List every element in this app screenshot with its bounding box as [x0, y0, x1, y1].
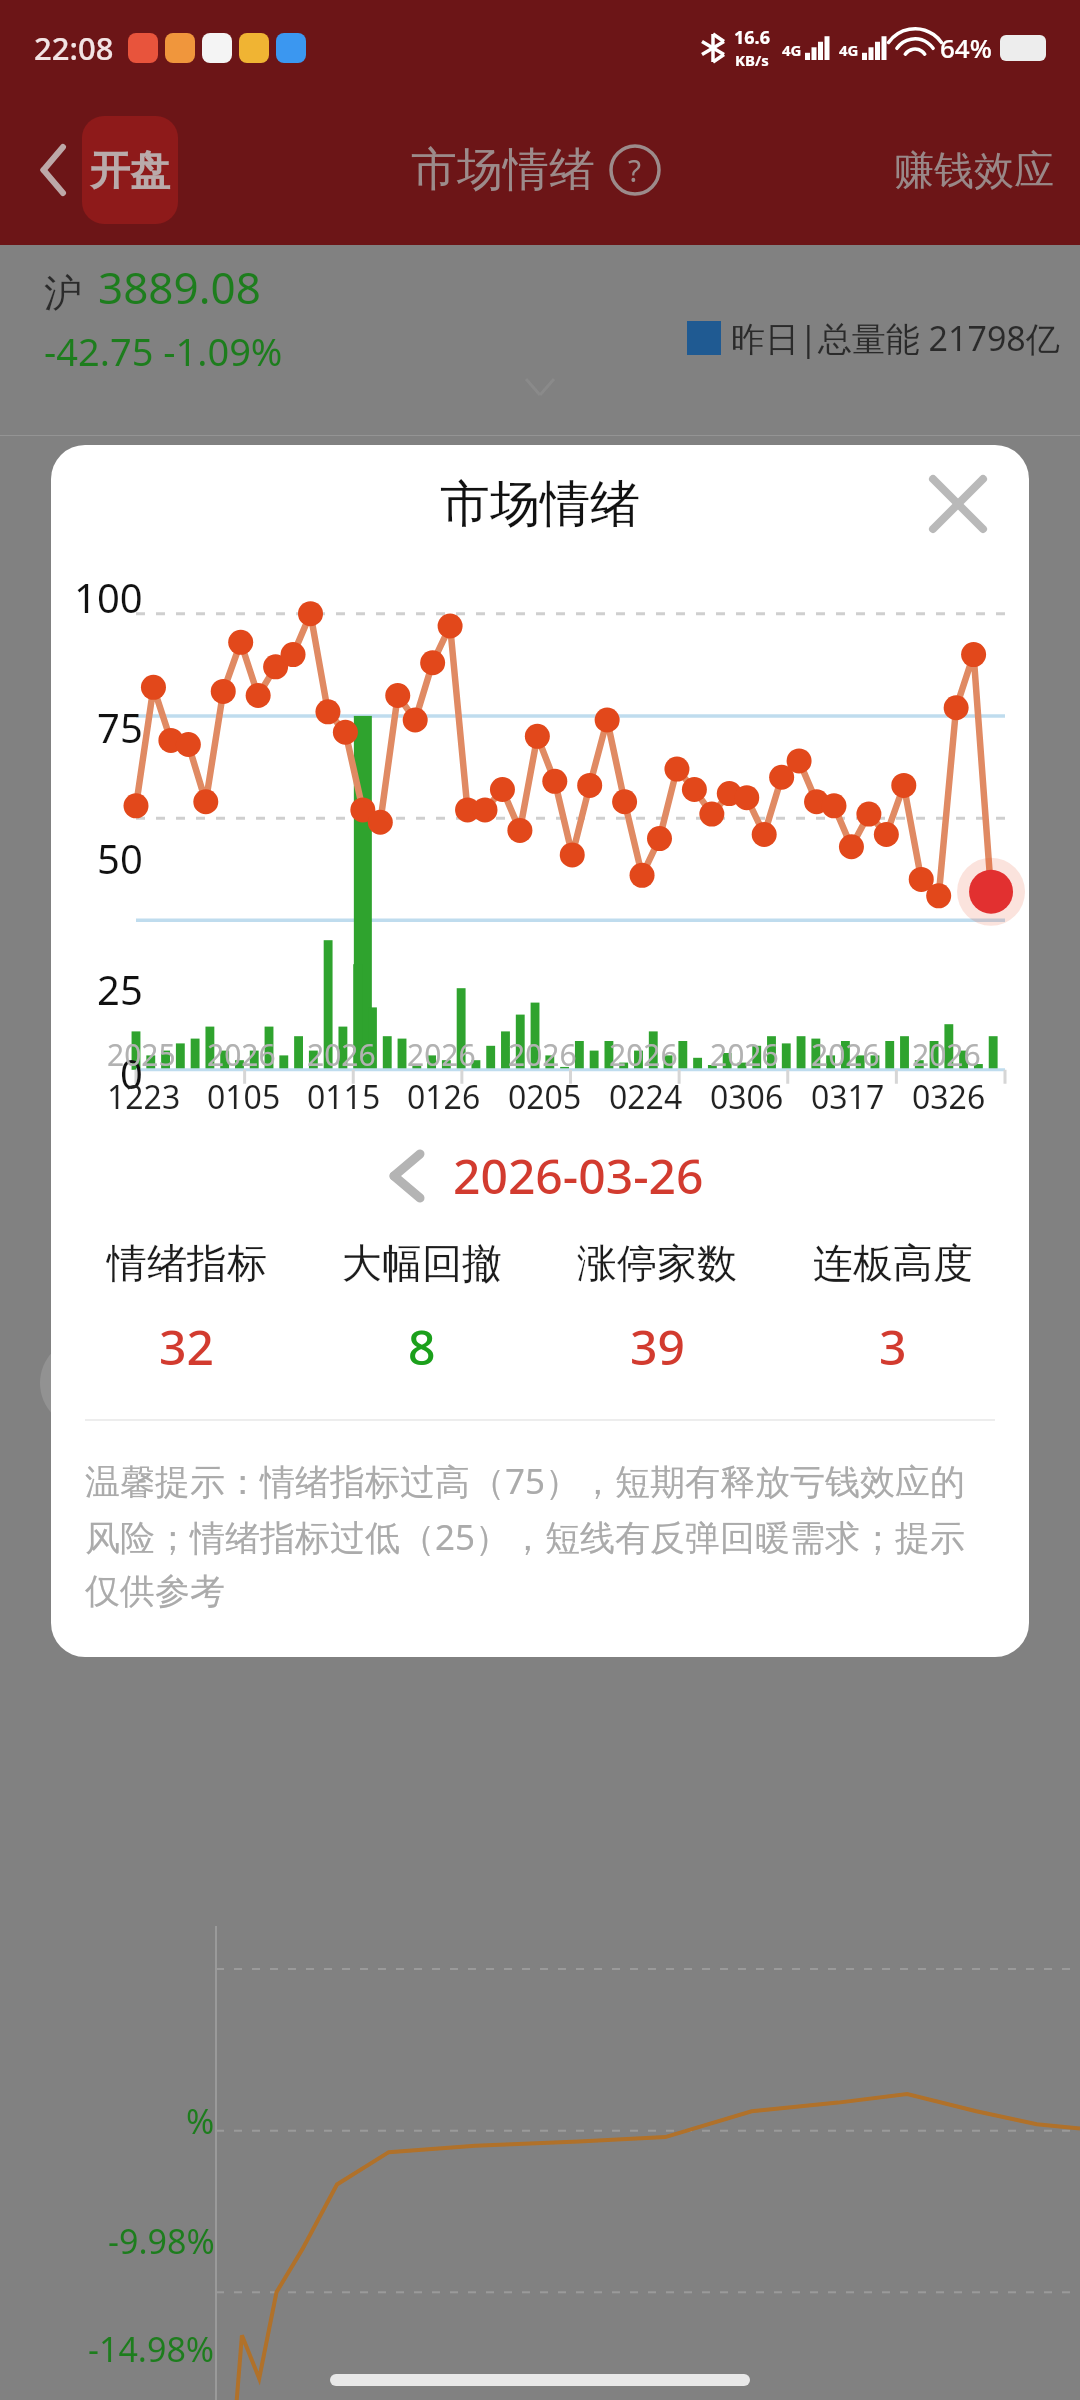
staticText: 8	[408, 1314, 436, 1379]
staticText: 市场情绪	[440, 473, 640, 536]
button[interactable]: 连板高度	[775, 1238, 1011, 1379]
staticText: 32	[159, 1314, 214, 1379]
staticText: 2026	[508, 1034, 577, 1075]
staticText: 2026	[811, 1034, 880, 1075]
staticText: 2026	[912, 1034, 981, 1075]
staticText: 温馨提示：情绪指标过高（75），短期有释放亏钱效应的风险；情绪指标过低（25），…	[85, 1457, 995, 1613]
button[interactable]: 开盘	[82, 116, 178, 224]
staticText: -14.98%	[88, 2326, 215, 2372]
staticText: 0	[120, 1046, 143, 1100]
staticText: 市场情绪	[411, 141, 595, 199]
button[interactable]: 赚钱效应	[894, 145, 1054, 195]
staticText: 0326	[912, 1075, 986, 1119]
staticText: 1223	[107, 1075, 181, 1119]
staticText: 3	[879, 1314, 907, 1379]
staticText: 50	[97, 831, 143, 885]
staticText: 3889.08	[98, 257, 261, 317]
button[interactable]: 大幅回撤	[304, 1238, 539, 1379]
staticText: 0115	[307, 1075, 381, 1119]
staticText: 39	[630, 1314, 685, 1379]
staticText: 昨日|总量能 21798亿	[731, 315, 1060, 361]
staticText: 沪	[44, 269, 82, 317]
staticText: -9.98%	[108, 2218, 215, 2264]
staticText: 25	[97, 962, 143, 1016]
staticText: 涨停家数	[577, 1238, 737, 1288]
staticText: 2026	[407, 1034, 476, 1075]
staticText: 100	[74, 570, 143, 624]
button[interactable]: Close	[919, 465, 997, 543]
button[interactable]: 市场情绪	[411, 141, 661, 199]
staticText: 2025	[107, 1034, 176, 1075]
staticText: 64%	[940, 30, 992, 65]
staticText: 4G	[839, 40, 859, 60]
staticText: 22:08	[34, 27, 114, 69]
button[interactable]: Previous date	[377, 1146, 437, 1206]
staticText: 75	[97, 700, 143, 754]
staticText: 0317	[811, 1075, 885, 1119]
staticText: 2026	[710, 1034, 779, 1075]
staticText: 2026	[207, 1034, 276, 1075]
staticText: 大幅回撤	[342, 1238, 502, 1288]
button[interactable]: Share	[40, 1338, 130, 1428]
staticText: KB/s	[735, 50, 769, 70]
button[interactable]: 情绪指标	[69, 1238, 304, 1379]
staticText: 开盘	[85, 145, 175, 195]
staticText: ?	[628, 150, 642, 191]
staticText: 4G	[782, 40, 802, 60]
staticText: 连板高度	[813, 1238, 973, 1288]
button[interactable]: Back	[26, 142, 82, 198]
staticText: 0205	[508, 1075, 582, 1119]
staticText: -42.75 -1.09%	[44, 325, 283, 377]
staticText: 0105	[207, 1075, 281, 1119]
staticText: 2026	[307, 1034, 376, 1075]
staticText: 2026	[609, 1034, 678, 1075]
staticText: %	[186, 2098, 215, 2144]
staticText: 16.6	[734, 25, 770, 50]
staticText: 0224	[609, 1075, 683, 1119]
staticText: 0306	[710, 1075, 784, 1119]
button[interactable]: 2026-03-26	[453, 1143, 704, 1208]
button[interactable]: 涨停家数	[539, 1238, 775, 1379]
staticText: 0126	[407, 1075, 481, 1119]
staticText: 情绪指标	[107, 1238, 267, 1288]
